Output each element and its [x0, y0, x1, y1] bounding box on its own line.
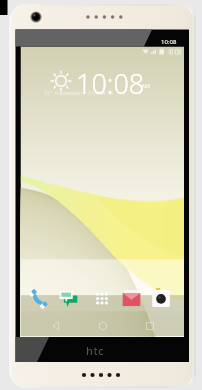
- button[interactable]: 31° Amsterdam · Fri, Feb 10: [44, 90, 113, 97]
- button[interactable]: 10:08: [76, 65, 145, 102]
- staticText: 10:08: [161, 38, 177, 46]
- staticText: AM: [141, 82, 151, 90]
- staticText: 10:08: [76, 65, 145, 102]
- staticText: 31° Amsterdam · Fri, Feb 10: [44, 90, 113, 97]
- staticText: htc: [86, 343, 105, 358]
